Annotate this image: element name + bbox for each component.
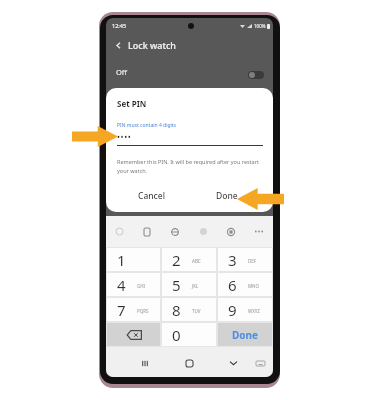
button[interactable]: Backspace — [107, 323, 160, 346]
staticText: TUV — [192, 308, 201, 314]
staticText: 12:45 — [112, 22, 127, 29]
staticText: 0 — [172, 325, 181, 345]
button[interactable]: Sticker — [217, 216, 245, 247]
staticText: 100% — [254, 23, 266, 29]
staticText: 6 — [228, 275, 237, 295]
button[interactable]: Off — [116, 62, 264, 82]
button[interactable]: 6 — [218, 273, 272, 296]
button[interactable]: 3 — [218, 248, 272, 271]
staticText: Done — [232, 328, 259, 342]
button[interactable]: Recents — [122, 347, 167, 377]
button[interactable]: 1 — [107, 248, 160, 271]
button[interactable]: Translate — [161, 216, 189, 247]
button[interactable]: More — [245, 216, 273, 247]
staticText: Done — [216, 190, 238, 202]
staticText: •••• — [117, 131, 132, 142]
button[interactable]: Back — [211, 347, 255, 377]
button[interactable]: 0 — [162, 323, 216, 346]
button[interactable]: Done — [189, 185, 265, 207]
staticText: Remember this PIN. It will be required a… — [117, 158, 270, 175]
button[interactable]: 2 — [162, 248, 216, 271]
button[interactable]: Emoji — [106, 216, 133, 247]
staticText: 9 — [228, 300, 237, 320]
staticText: Off — [116, 67, 128, 77]
staticText: Cancel — [138, 190, 165, 202]
staticText: Set PIN — [117, 98, 147, 109]
button[interactable]: Done — [218, 323, 272, 346]
staticText: 4 — [117, 275, 126, 295]
staticText: GHI — [137, 283, 146, 289]
button[interactable]: Settings — [189, 216, 217, 247]
staticText: PQRS — [137, 308, 149, 314]
staticText: 7 — [117, 300, 126, 320]
button[interactable]: 4 — [107, 273, 160, 296]
button[interactable]: 9 — [218, 298, 272, 321]
button[interactable]: 7 — [107, 298, 160, 321]
staticText: 8 — [172, 300, 181, 320]
staticText: 2 — [172, 250, 181, 270]
staticText: ABC — [192, 258, 201, 264]
button[interactable]: 8 — [162, 298, 216, 321]
button[interactable]: Hide keyboard — [253, 356, 267, 370]
staticText: 5 — [172, 275, 181, 295]
staticText: PIN must contain 4 digits — [117, 122, 176, 129]
staticText: MNO — [248, 283, 260, 289]
button[interactable]: Clipboard — [133, 216, 161, 247]
staticText: JKL — [192, 283, 199, 289]
button[interactable]: Navigate up — [113, 40, 124, 51]
button[interactable]: Home — [167, 347, 211, 377]
staticText: 1 — [117, 250, 126, 270]
button[interactable]: 5 — [162, 273, 216, 296]
staticText: DEF — [248, 258, 257, 264]
staticText: Lock watch — [128, 39, 177, 51]
button[interactable]: Cancel — [114, 185, 189, 207]
staticText: WXYZ — [248, 308, 260, 314]
staticText: 3 — [228, 250, 237, 270]
